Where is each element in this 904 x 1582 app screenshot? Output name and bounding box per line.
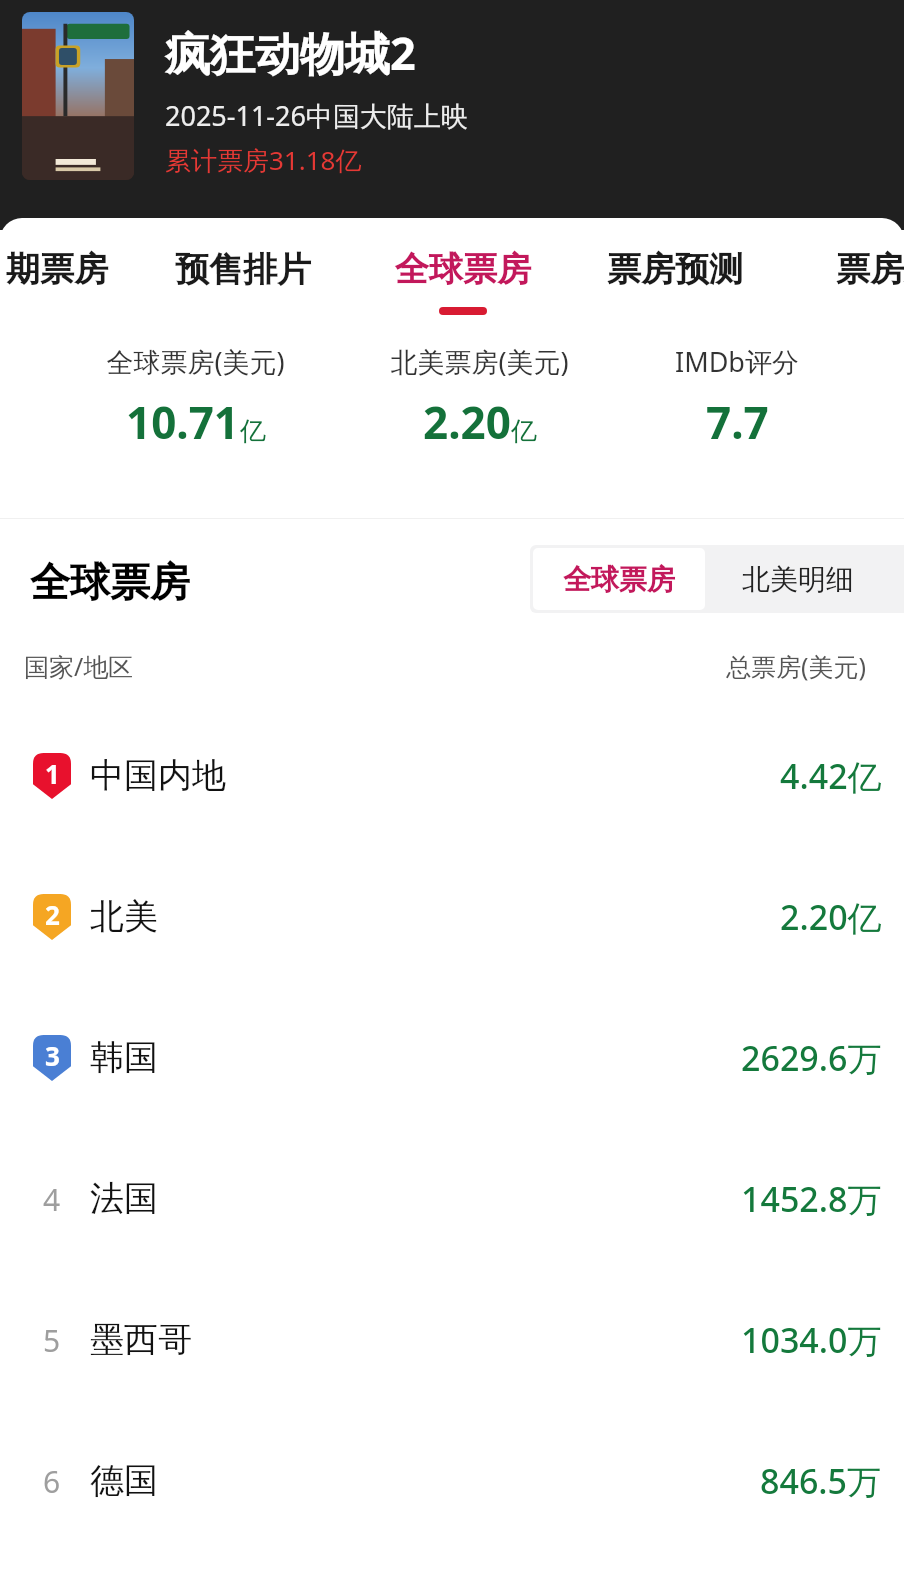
staticText: 中国内地 <box>90 754 226 797</box>
button[interactable]: 4 <box>0 1128 904 1269</box>
staticText: 全球票房 <box>395 248 531 291</box>
button[interactable]: 票房预测 <box>600 218 750 323</box>
staticText: 法国 <box>90 1177 158 1220</box>
staticText: 2.20亿 <box>780 894 882 940</box>
staticText: 2025-11-26中国大陆上映 <box>165 97 468 134</box>
button[interactable]: 预售排片 <box>168 218 318 323</box>
staticText: 北美 <box>90 895 158 938</box>
button[interactable]: 3 <box>0 987 904 1128</box>
staticText: 3 <box>45 1038 60 1073</box>
button[interactable]: 期票房 <box>0 218 132 323</box>
button[interactable]: 6 <box>0 1410 904 1551</box>
staticText: 国家/地区 <box>24 649 134 683</box>
staticText: 2 <box>45 897 60 932</box>
button[interactable]: 全球票房 <box>388 218 538 323</box>
button[interactable]: 票房分 <box>812 218 904 323</box>
staticText: 总票房(美元) <box>726 649 867 683</box>
button[interactable]: 2 <box>0 846 904 987</box>
staticText: 846.5万 <box>760 1458 882 1504</box>
staticText: IMDb评分 <box>675 343 799 380</box>
staticText: 德国 <box>90 1459 158 1502</box>
staticText: 亿 <box>240 415 266 448</box>
button[interactable]: 全球票房 <box>533 548 705 610</box>
staticText: 北美票房(美元) <box>390 343 569 380</box>
staticText: 7.7 <box>706 392 769 452</box>
staticText: 1452.8万 <box>741 1176 882 1222</box>
staticText: 亿 <box>511 415 537 448</box>
staticText: 2629.6万 <box>741 1035 882 1081</box>
button[interactable]: 北美明细 <box>708 545 888 613</box>
staticText: 2.20 <box>423 392 511 452</box>
staticText: 全球票房 <box>563 562 675 597</box>
button[interactable]: 1 <box>0 705 904 846</box>
staticText: 全球票房(美元) <box>106 343 285 380</box>
staticText: 票房分 <box>836 248 904 291</box>
staticText: 1 <box>45 756 60 791</box>
staticText: 4 <box>43 1179 61 1220</box>
staticText: 预售排片 <box>175 248 311 291</box>
staticText: 累计票房31.18亿 <box>165 142 362 178</box>
staticText: 6 <box>43 1461 61 1502</box>
staticText: 韩国 <box>90 1036 158 1079</box>
staticText: 墨西哥 <box>90 1318 192 1361</box>
staticText: 1034.0万 <box>741 1317 882 1363</box>
staticText: 4.42亿 <box>780 753 882 799</box>
staticText: 北美明细 <box>742 562 854 597</box>
button[interactable]: 5 <box>0 1269 904 1410</box>
staticText: 疯狂动物城2 <box>165 22 416 83</box>
staticText: 票房预测 <box>607 248 743 291</box>
staticText: 期票房 <box>6 248 108 291</box>
staticText: 全球票房 <box>30 557 190 607</box>
staticText: 5 <box>43 1320 61 1361</box>
staticText: 10.71 <box>126 392 240 452</box>
